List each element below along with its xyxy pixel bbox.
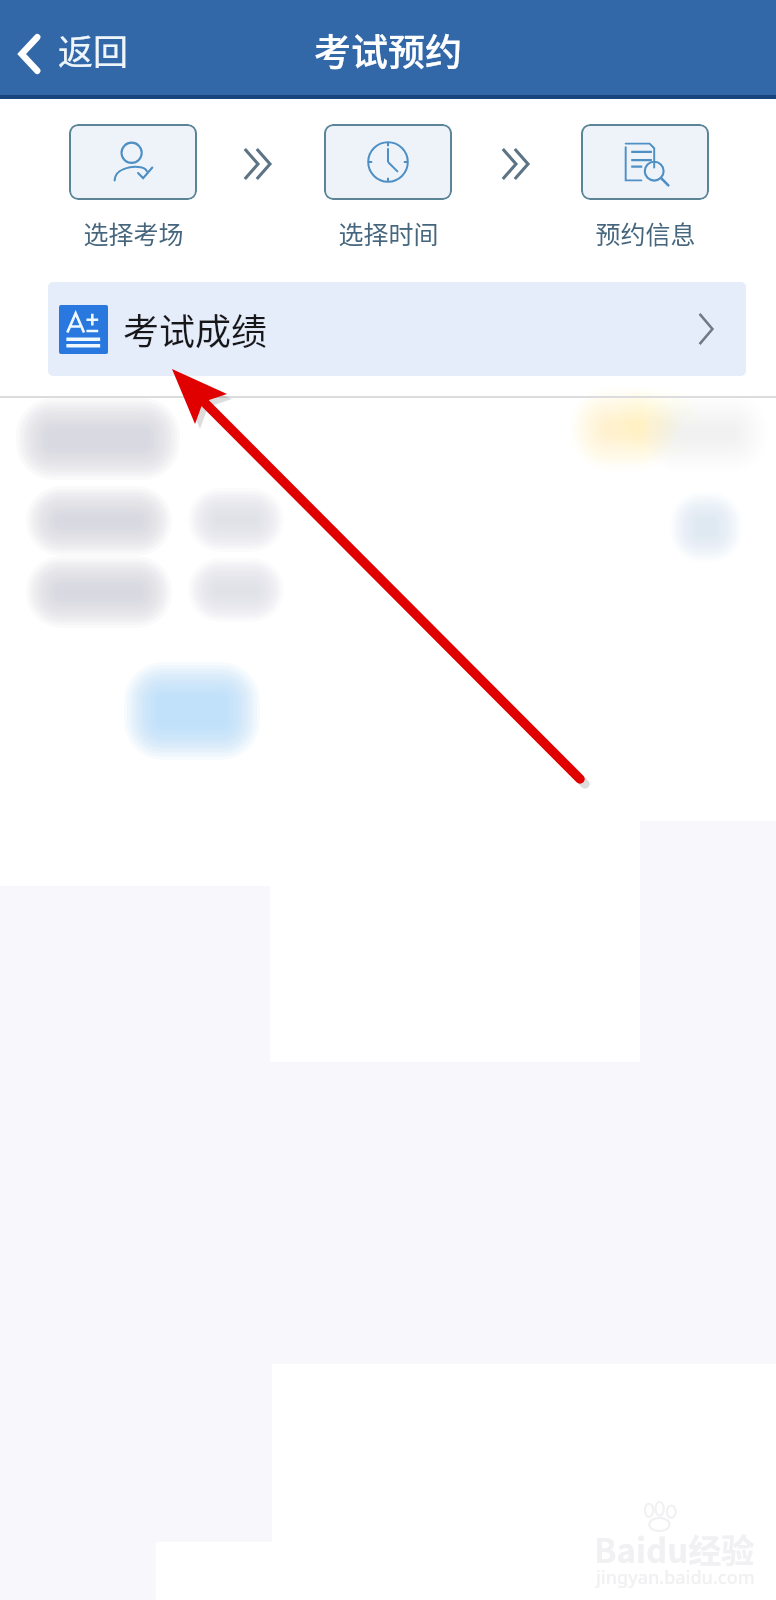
staticText: 考试预约	[314, 23, 462, 77]
button[interactable]: 选择考场	[69, 124, 197, 251]
button[interactable]: 选择时间	[324, 124, 452, 251]
staticText: 选择考场	[83, 215, 184, 251]
staticText: 预约信息	[595, 215, 696, 251]
staticText: 选择时间	[338, 215, 439, 251]
button[interactable]: Back	[0, 14, 147, 85]
other: Back	[17, 34, 40, 74]
staticText: jingyan.baidu.com	[596, 1565, 755, 1590]
staticText: 返回	[58, 24, 129, 75]
button[interactable]: 预约信息	[581, 124, 709, 251]
staticText: 考试成绩	[123, 303, 268, 355]
staticText: Baidu经验	[594, 1525, 755, 1573]
button[interactable]: 考试成绩	[48, 282, 746, 376]
